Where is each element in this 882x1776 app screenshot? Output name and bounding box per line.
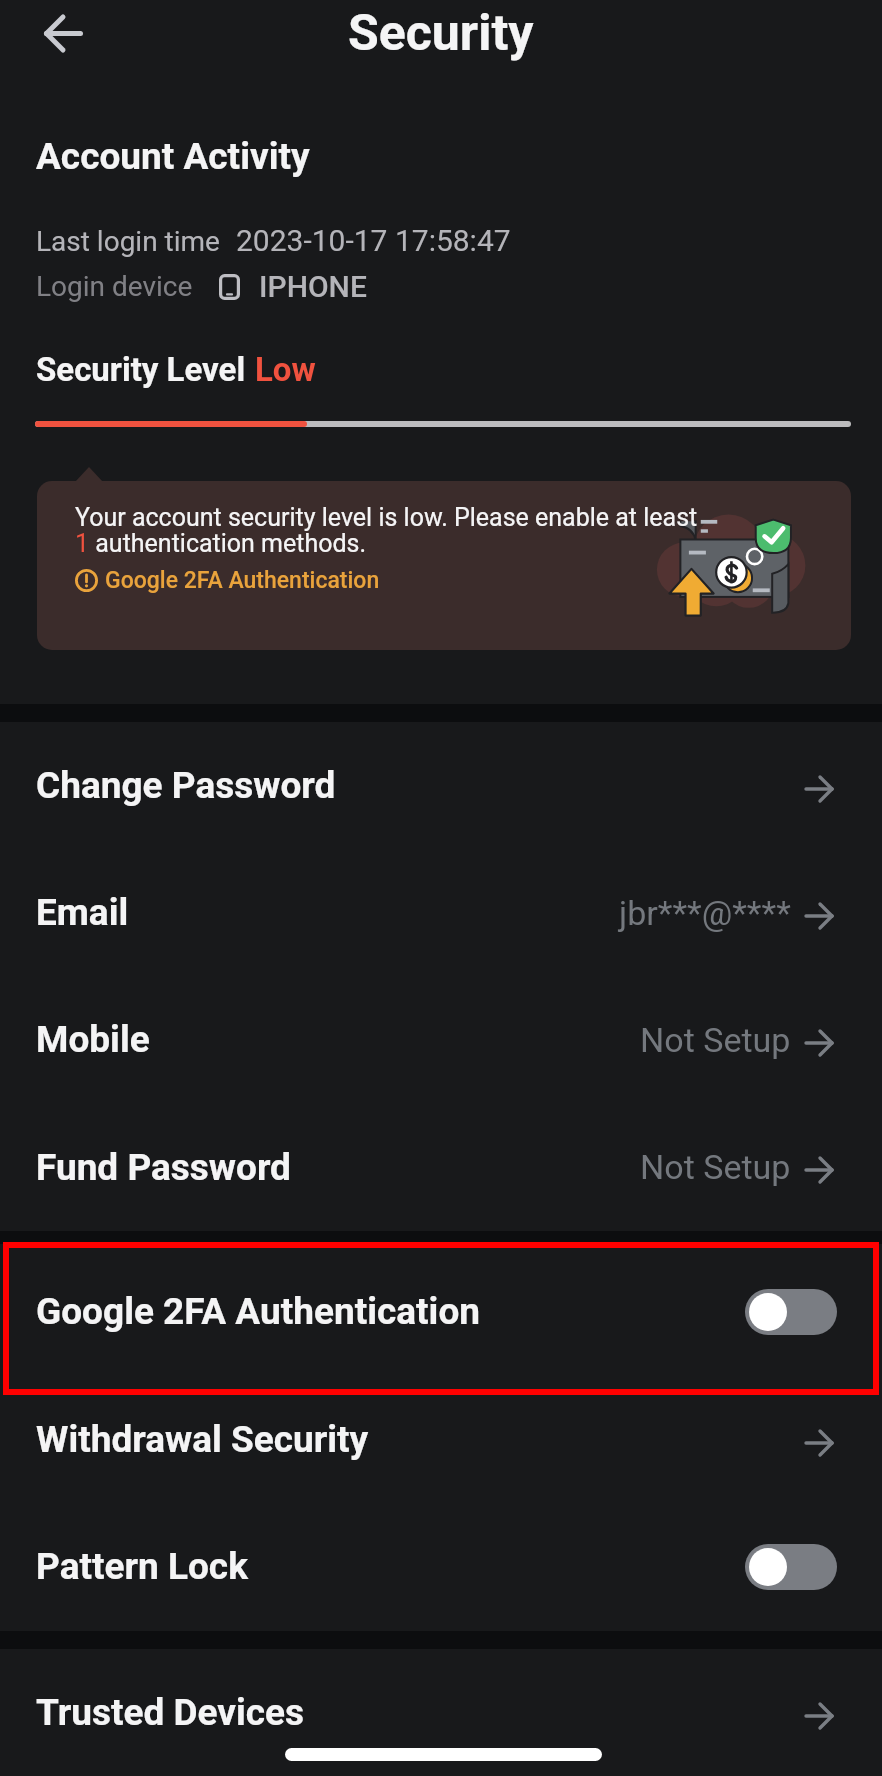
staticText: Trusted Devices: [36, 1691, 305, 1734]
staticText: Low: [255, 350, 316, 389]
staticText: Your account security level is low. Plea…: [75, 505, 698, 557]
button[interactable]: Email: [0, 849, 882, 976]
staticText: jbr***@****: [619, 893, 791, 933]
staticText: IPHONE: [259, 269, 367, 304]
button[interactable]: Google 2FA Authentication: [0, 1246, 882, 1377]
button[interactable]: Back: [35, 5, 91, 61]
button[interactable]: Change Password: [0, 722, 882, 849]
staticText: Mobile: [36, 1018, 150, 1061]
staticText: Security Level: [36, 350, 246, 389]
staticText: Not Setup: [640, 1147, 791, 1187]
staticText: Last login time: [36, 225, 220, 258]
staticText: Google 2FA Authentication: [36, 1290, 481, 1333]
button[interactable]: Pattern Lock: [0, 1502, 882, 1631]
staticText: Change Password: [36, 764, 336, 807]
button[interactable]: Trusted Devices: [0, 1649, 882, 1776]
button[interactable]: Fund Password: [0, 1103, 882, 1231]
staticText: Account Activity: [36, 135, 310, 178]
staticText: 2023-10-17 17:58:47: [236, 223, 511, 258]
staticText: Fund Password: [36, 1146, 291, 1189]
staticText: Google 2FA Authentication: [105, 567, 380, 594]
staticText: Email: [36, 891, 129, 934]
button[interactable]: Withdrawal Security: [0, 1377, 882, 1502]
staticText: Security: [348, 4, 534, 63]
staticText: Login device: [36, 270, 193, 303]
staticText: Pattern Lock: [36, 1545, 248, 1588]
staticText: Withdrawal Security: [36, 1418, 369, 1461]
staticText: Not Setup: [640, 1020, 791, 1060]
button[interactable]: Mobile: [0, 976, 882, 1103]
